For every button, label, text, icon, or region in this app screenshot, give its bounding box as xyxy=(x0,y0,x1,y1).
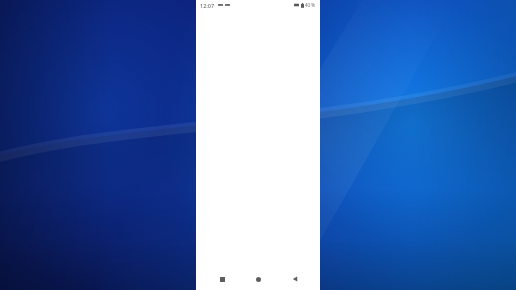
button[interactable]: Recent apps xyxy=(211,268,233,290)
button[interactable]: Back xyxy=(284,268,306,290)
button[interactable]: Home xyxy=(247,268,269,290)
staticText: 12:07 xyxy=(200,2,215,9)
staticText: 40 % xyxy=(305,2,316,8)
